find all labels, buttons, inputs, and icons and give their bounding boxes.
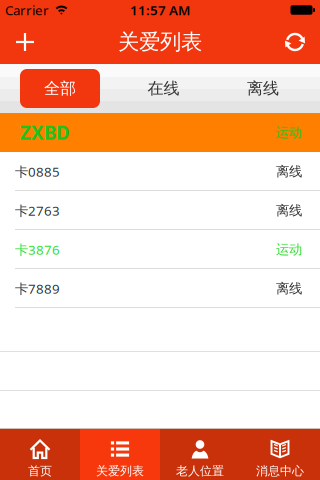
- button[interactable]: 卡0885: [0, 152, 320, 191]
- button[interactable]: 关爱列表: [80, 429, 160, 480]
- button[interactable]: 全部: [20, 69, 100, 108]
- staticText: 卡0885: [15, 163, 60, 180]
- button[interactable]: 老人位置: [160, 429, 240, 480]
- button[interactable]: 卡3876: [0, 230, 320, 269]
- button[interactable]: 在线: [123, 69, 203, 108]
- button[interactable]: 卡2763: [0, 191, 320, 230]
- staticText: 离线: [276, 163, 302, 180]
- staticText: 运动: [276, 241, 302, 258]
- staticText: 全部: [44, 79, 76, 98]
- staticText: 在线: [147, 79, 179, 98]
- staticText: 卡2763: [15, 202, 60, 219]
- staticText: ZXBD: [20, 120, 70, 145]
- button[interactable]: 首页: [0, 429, 80, 480]
- staticText: Carrier: [5, 1, 49, 19]
- button[interactable]: ZXBD: [0, 113, 320, 152]
- staticText: 离线: [276, 280, 302, 297]
- button[interactable]: 卡7889: [0, 269, 320, 308]
- staticText: 关爱列表: [96, 464, 144, 478]
- staticText: 离线: [276, 202, 302, 219]
- button[interactable]: 刷新: [276, 20, 314, 64]
- button[interactable]: 添加: [7, 20, 43, 64]
- button[interactable]: 消息中心: [240, 429, 320, 480]
- staticText: 卡3876: [15, 241, 60, 258]
- button[interactable]: 离线: [223, 69, 303, 108]
- staticText: 运动: [276, 124, 302, 141]
- staticText: 离线: [247, 79, 279, 98]
- staticText: 关爱列表: [118, 29, 202, 55]
- staticText: 老人位置: [176, 464, 224, 478]
- staticText: 卡7889: [15, 280, 60, 297]
- staticText: 11:57 AM: [130, 1, 190, 19]
- staticText: 消息中心: [256, 464, 304, 478]
- staticText: 首页: [28, 464, 52, 478]
